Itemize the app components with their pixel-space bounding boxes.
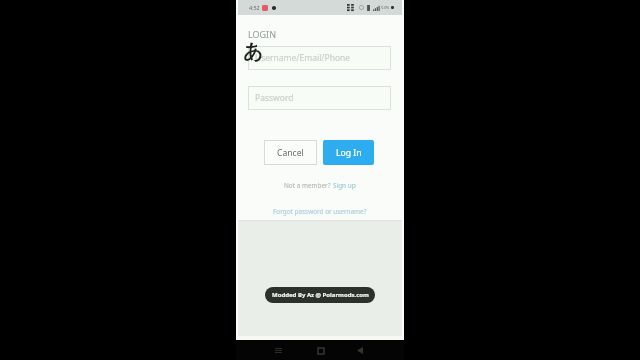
button[interactable]: Password: [248, 86, 391, 110]
staticText: Not a member?: [284, 181, 333, 190]
button[interactable]: Log In: [323, 140, 374, 165]
button[interactable]: Home: [314, 344, 327, 357]
button[interactable]: Back: [353, 344, 366, 357]
button[interactable]: Recents: [272, 344, 285, 357]
staticText: 4:52: [249, 4, 260, 11]
button[interactable]: Cancel: [264, 140, 317, 165]
staticText: Password: [255, 92, 294, 104]
staticText: あ: [243, 39, 263, 64]
staticText: 53%: [381, 5, 390, 11]
staticText: Modded By Az @ Polarmods.com: [272, 291, 369, 299]
button[interactable]: Username/Email/Phone: [248, 46, 391, 70]
staticText: Cancel: [277, 147, 304, 159]
staticText: Log In: [336, 147, 362, 159]
button[interactable]: Sign up: [333, 181, 356, 190]
staticText: LOGIN: [248, 28, 277, 40]
button[interactable]: Forgot password or username?: [273, 207, 367, 216]
staticText: Username/Email/Phone: [255, 52, 351, 64]
